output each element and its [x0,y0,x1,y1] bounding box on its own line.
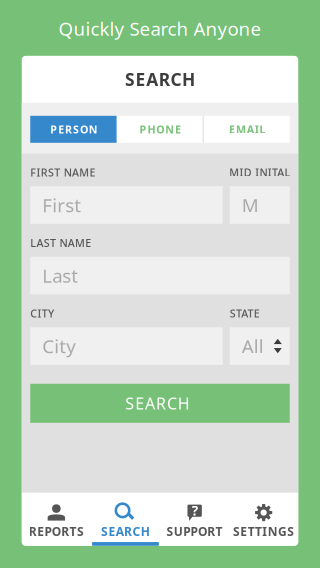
staticText: SEARCH [101,523,150,539]
staticText: STATE [230,306,260,320]
staticText: M [242,193,259,217]
staticText: First [42,193,81,217]
staticText: City [42,334,76,358]
staticText: EMAIL [229,122,268,136]
staticText: MID INITAL [229,165,290,179]
button[interactable]: SETTINGS [229,493,298,546]
button[interactable]: REPORTS [22,493,91,546]
staticText: PERSON [50,122,101,136]
staticText: ? [192,502,198,519]
staticText: SUPPORT [166,523,223,539]
staticText: Quickly Search Anyone [58,16,261,41]
staticText: CITY [30,306,54,320]
button[interactable]: SEARCH [30,384,290,423]
staticText: SETTINGS [233,523,294,539]
staticText: SEARCH [125,68,195,91]
button[interactable]: EMAIL [204,116,290,143]
staticText: FIRST NAME [30,165,95,179]
button[interactable]: ? [160,493,229,546]
button[interactable]: SEARCH [91,493,160,546]
button[interactable]: PERSON [30,116,117,143]
staticText: SEARCH [125,393,195,414]
staticText: Last [42,263,78,288]
staticText: PHONE [139,122,184,136]
staticText: LAST NAME [30,236,91,250]
button[interactable]: PHONE [117,116,203,143]
staticText: All [242,334,264,358]
staticText: REPORTS [29,523,84,539]
